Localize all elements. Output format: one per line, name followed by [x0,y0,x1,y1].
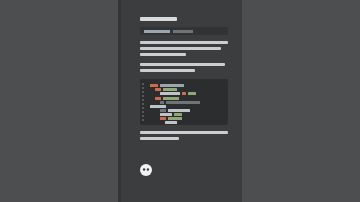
button[interactable] [140,17,177,21]
button[interactable]: Author avatar [140,164,152,176]
button[interactable] [140,27,228,35]
button[interactable] [140,79,228,125]
